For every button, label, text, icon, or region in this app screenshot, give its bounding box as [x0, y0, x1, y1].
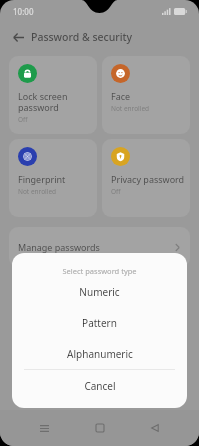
staticText: Lock screen password	[18, 90, 68, 113]
staticText: Face	[111, 90, 131, 102]
button[interactable]: Privacy password	[102, 139, 190, 217]
staticText: Cancel	[84, 379, 116, 393]
button[interactable]: Numeric	[12, 276, 187, 307]
staticText: Alphanumeric	[67, 347, 133, 361]
staticText: Numeric	[79, 285, 120, 299]
button[interactable]: Fingerprint	[9, 139, 97, 217]
button[interactable]: Back	[143, 416, 167, 440]
button[interactable]: Alphanumeric	[12, 338, 187, 369]
staticText: Fingerprint	[18, 173, 66, 185]
staticText: Not enrolled	[111, 104, 150, 113]
staticText: Pattern	[82, 316, 117, 330]
staticText: Off	[18, 115, 28, 124]
button[interactable]: Face	[102, 56, 190, 134]
button[interactable]: Pattern	[12, 307, 187, 338]
button[interactable]: Back	[8, 27, 28, 47]
button[interactable]: Recents	[32, 416, 56, 440]
staticText: Password & security	[31, 30, 133, 44]
staticText: Privacy password	[111, 173, 185, 185]
button[interactable]: Home	[88, 416, 112, 440]
staticText: Not enrolled	[18, 187, 57, 196]
button[interactable]: Manage passwords	[9, 227, 190, 267]
staticText: Off	[111, 187, 121, 196]
button[interactable]: Lock screen password	[9, 56, 97, 134]
staticText: 10:00	[13, 6, 34, 17]
button[interactable]: Cancel	[12, 370, 187, 401]
staticText: Manage passwords	[18, 241, 174, 253]
staticText: Select password type	[12, 266, 187, 276]
